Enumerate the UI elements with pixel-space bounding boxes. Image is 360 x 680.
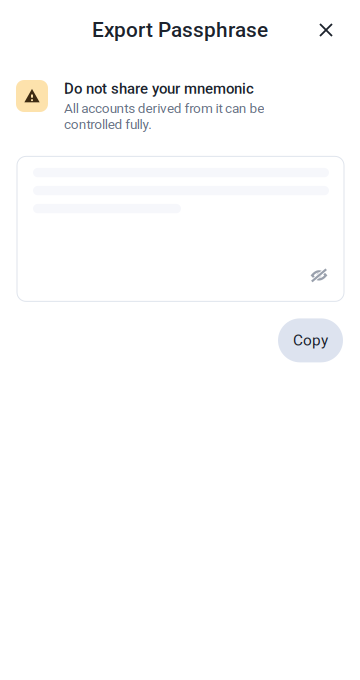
button[interactable]: Copy — [278, 318, 343, 362]
button[interactable]: Close — [304, 8, 348, 52]
staticText: Copy — [293, 331, 328, 349]
staticText: Export Passphrase — [92, 18, 268, 42]
staticText: All accounts derived from it can be cont… — [64, 100, 264, 132]
staticText: Do not share your mnemonic — [64, 80, 254, 97]
button[interactable]: Show passphrase — [304, 262, 334, 288]
